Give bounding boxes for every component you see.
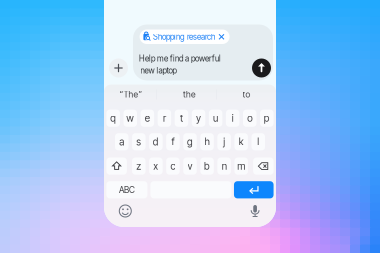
staticText: new laptop [140,66,176,75]
staticText: j [223,136,225,148]
staticText: c [170,160,175,172]
button[interactable]: Emoji [0,0,380,253]
staticText: f [171,136,174,148]
button[interactable]: Shift [0,0,380,253]
button[interactable]: u [0,0,380,253]
staticText: “The” [119,89,142,100]
staticText: ABC [119,185,135,195]
button[interactable]: t [0,0,380,253]
button[interactable]: Add attachment [0,0,380,253]
staticText: a [119,136,124,148]
button[interactable]: Dictate [0,0,380,253]
staticText: u [213,112,218,124]
button[interactable]: n [0,0,380,253]
button[interactable]: l [0,0,380,253]
button[interactable]: d [0,0,380,253]
button[interactable]: w [0,0,380,253]
button[interactable]: k [0,0,380,253]
button[interactable]: a [0,0,380,253]
button[interactable]: j [0,0,380,253]
button[interactable]: Space [0,0,380,253]
staticText: n [222,160,227,172]
staticText: z [136,160,141,172]
staticText: s [136,136,141,148]
button[interactable]: i [0,0,380,253]
staticText: q [110,112,116,124]
button[interactable]: q [0,0,380,253]
button[interactable]: m [0,0,380,253]
button[interactable]: Return [0,0,380,253]
staticText: w [126,112,134,124]
button[interactable]: c [0,0,380,253]
staticText: i [232,112,234,124]
button[interactable]: h [0,0,380,253]
staticText: x [153,160,158,172]
staticText: the [183,89,196,100]
staticText: l [257,136,259,148]
staticText: b [204,160,210,172]
button[interactable]: e [0,0,380,253]
staticText: e [145,112,150,124]
button[interactable]: Delete [0,0,380,253]
staticText: g [187,136,193,148]
button[interactable]: z [0,0,380,253]
staticText: k [239,136,244,148]
button[interactable]: s [0,0,380,253]
staticText: v [187,160,192,172]
button[interactable]: Send [0,0,380,253]
button[interactable]: b [0,0,380,253]
staticText: r [163,112,166,124]
button[interactable]: v [0,0,380,253]
staticText: o [247,112,252,124]
staticText: m [237,160,245,172]
button[interactable]: f [0,0,380,253]
button[interactable]: ABC [0,0,380,253]
staticText: h [205,136,210,148]
staticText: Shopping research [153,32,215,42]
button[interactable]: Shopping research [0,0,380,253]
staticText: d [153,136,159,148]
staticText: to [242,89,250,100]
button[interactable]: o [0,0,380,253]
button[interactable]: y [0,0,380,253]
staticText: t [180,112,183,124]
staticText: y [196,112,201,124]
staticText: Help me find a powerful [139,54,221,63]
button[interactable]: x [0,0,380,253]
button[interactable]: p [0,0,380,253]
staticText: p [264,112,270,124]
button[interactable]: g [0,0,380,253]
button[interactable]: r [0,0,380,253]
